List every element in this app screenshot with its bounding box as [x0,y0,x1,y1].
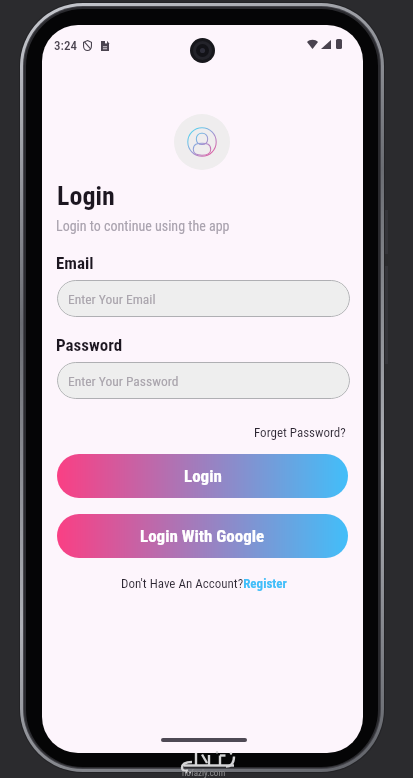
staticText: nofazly.com [182,768,226,778]
staticText: Login to continue using the app [56,218,230,234]
staticText: 3:24 [54,38,77,53]
button[interactable]: Enter Your Password [57,362,350,399]
button[interactable]: Forget Password? [252,423,348,442]
staticText: Login [57,181,115,211]
button[interactable]: Don't Have An Account?Register [119,574,289,593]
staticText: Forget Password? [254,425,346,440]
staticText: Enter Your Password [68,373,179,389]
staticText: Don't Have An Account?Register [121,576,287,591]
button[interactable]: Enter Your Email [57,280,350,317]
button[interactable]: Login [57,454,348,498]
staticText: Login With Google [140,526,265,546]
staticText: Login [184,466,222,486]
staticText: Password [56,335,123,355]
staticText: Enter Your Email [68,291,156,307]
button[interactable]: Login With Google [57,514,348,558]
staticText: Email [56,253,94,273]
